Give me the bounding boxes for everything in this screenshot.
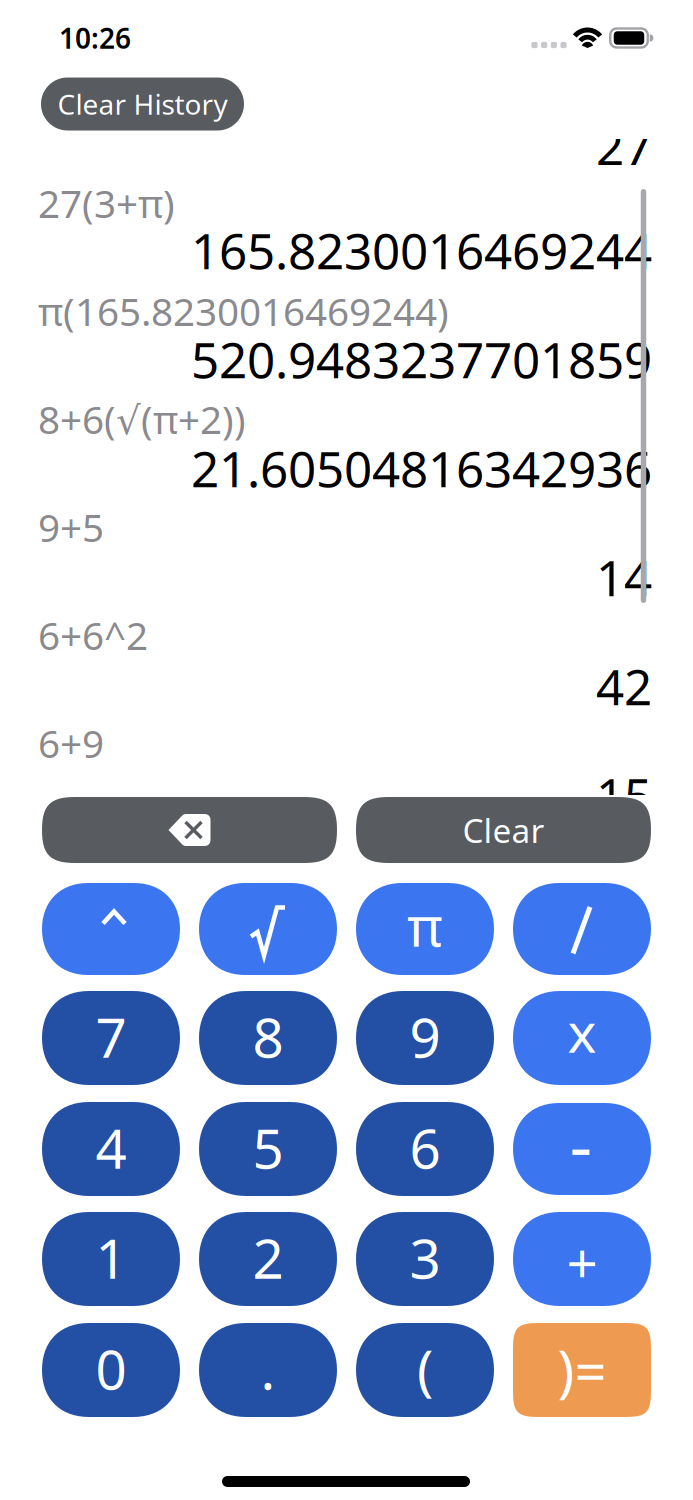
button[interactable]: Clear History	[41, 77, 244, 130]
button[interactable]: 7	[42, 991, 180, 1085]
button[interactable]: Power	[42, 883, 180, 975]
button[interactable]: Backspace	[42, 797, 337, 863]
staticText: 4	[95, 1111, 126, 1184]
staticText: 9+5	[38, 501, 104, 553]
staticText: π(165.8230016469244)	[38, 285, 449, 337]
staticText: 165.8230016469244	[191, 217, 652, 283]
button[interactable]: 9	[356, 991, 494, 1085]
staticText: Clear	[462, 808, 544, 852]
staticText: 2	[252, 1221, 283, 1294]
button[interactable]: +	[513, 1212, 651, 1306]
button[interactable]: Pi	[356, 883, 494, 975]
button[interactable]: 0	[42, 1323, 180, 1417]
button[interactable]: 3	[356, 1212, 494, 1306]
button[interactable]: 8	[199, 991, 337, 1085]
staticText: 6+9	[38, 717, 104, 769]
staticText: 14	[596, 544, 652, 610]
button[interactable]: .	[199, 1323, 337, 1417]
staticText: +	[566, 1226, 597, 1298]
staticText: 27	[596, 113, 652, 179]
staticText: 9	[409, 1000, 440, 1073]
staticText: 15	[596, 762, 652, 828]
staticText: 5	[252, 1111, 283, 1184]
staticText: 520.9483237701859	[191, 326, 652, 392]
button[interactable]: )=	[513, 1323, 651, 1417]
button[interactable]: (	[356, 1323, 494, 1417]
staticText: 10:26	[59, 19, 131, 57]
button[interactable]: Minus	[513, 1103, 651, 1195]
staticText: 6	[409, 1111, 440, 1184]
staticText: 8	[252, 1000, 283, 1073]
staticText: 0	[95, 1332, 126, 1405]
button[interactable]: 4	[42, 1102, 180, 1196]
staticText: x	[567, 995, 596, 1068]
button[interactable]: Clear	[356, 797, 651, 863]
button[interactable]: Divide	[513, 883, 651, 975]
staticText: Clear History	[57, 85, 227, 123]
button[interactable]: x	[513, 991, 651, 1085]
button[interactable]: 5	[199, 1102, 337, 1196]
staticText: )=	[557, 1333, 606, 1407]
staticText: 21.60504816342936	[191, 435, 652, 501]
staticText: .	[260, 1332, 275, 1405]
staticText: π	[407, 889, 443, 961]
staticText: 6+6^2	[38, 609, 148, 661]
staticText: 42	[596, 653, 652, 719]
button[interactable]: 6	[356, 1102, 494, 1196]
staticText: 3	[409, 1221, 440, 1294]
staticText: 8+6(√(π+2))	[38, 393, 246, 445]
staticText: 7	[95, 1000, 126, 1073]
button[interactable]: 1	[42, 1212, 180, 1306]
staticText: 27(3+π)	[38, 177, 175, 229]
staticText: (	[417, 1332, 433, 1405]
button[interactable]: 2	[199, 1212, 337, 1306]
button[interactable]: Square root	[199, 883, 337, 975]
staticText: 1	[95, 1221, 126, 1294]
